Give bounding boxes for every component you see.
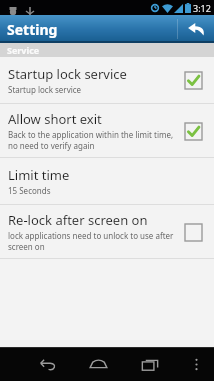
button[interactable]: Limit time <box>0 158 214 204</box>
staticText: Startup lock service <box>8 65 127 83</box>
staticText: Service <box>7 44 40 56</box>
button[interactable]: Enabled checkbox <box>176 63 210 97</box>
button[interactable]: Re-lock after screen on <box>0 205 214 258</box>
staticText: lock applications need to unlock to use … <box>8 230 174 241</box>
staticText: Limit time <box>8 166 70 184</box>
button[interactable]: Startup lock service <box>0 57 214 103</box>
staticText: Back to the application within the limit… <box>8 129 174 140</box>
staticText: 15 Seconds <box>8 185 51 196</box>
button[interactable]: Back <box>26 347 66 381</box>
button[interactable]: Setting <box>7 20 58 39</box>
button[interactable]: Home <box>78 347 118 381</box>
staticText: no need to verify again <box>8 140 95 151</box>
button[interactable]: Enabled checkbox <box>176 114 210 148</box>
staticText: screen on <box>8 241 45 252</box>
button[interactable]: Allow short exit <box>0 104 214 157</box>
button[interactable]: Recent apps <box>130 347 170 381</box>
staticText: 3:12 <box>193 2 211 14</box>
button[interactable]: Disabled checkbox <box>176 215 210 249</box>
staticText: Re-lock after screen on <box>8 211 148 229</box>
button[interactable]: Back <box>178 15 214 43</box>
button[interactable]: More options <box>184 347 208 381</box>
staticText: Startup lock service <box>8 84 82 95</box>
staticText: Setting <box>7 20 58 39</box>
staticText: Allow short exit <box>8 110 102 128</box>
